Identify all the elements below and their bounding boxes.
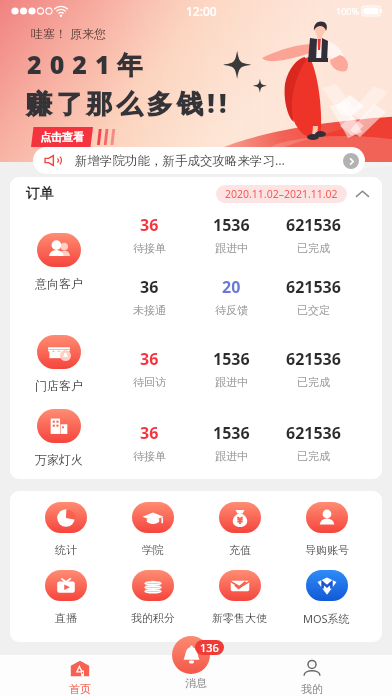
- staticText: 首页: [69, 682, 91, 696]
- staticText: 待接单: [133, 449, 166, 463]
- staticText: 直播: [55, 611, 77, 625]
- staticText: 待接单: [133, 241, 166, 255]
- button[interactable]: 首页: [22, 655, 138, 696]
- staticText: 赚了那么多钱!!: [26, 85, 231, 121]
- button[interactable]: 36: [108, 422, 190, 463]
- button[interactable]: MOS系统: [283, 570, 370, 626]
- staticText: 36: [140, 348, 159, 370]
- button[interactable]: 点击查看: [31, 127, 93, 147]
- staticText: 已完成: [297, 375, 330, 389]
- staticText: 136: [200, 640, 219, 655]
- button[interactable]: 136: [151, 634, 241, 696]
- button[interactable]: 充值: [196, 502, 283, 557]
- staticText: 新增学院功能，新手成交攻略来学习…: [75, 152, 285, 169]
- staticText: 学院: [142, 543, 164, 557]
- button[interactable]: 新零售大使: [196, 570, 283, 625]
- staticText: 统计: [55, 543, 77, 557]
- staticText: 点击查看: [40, 130, 84, 144]
- staticText: 621536: [286, 214, 341, 236]
- staticText: 新零售大使: [212, 611, 267, 625]
- staticText: 621536: [286, 422, 341, 444]
- button[interactable]: 意向客户: [10, 233, 108, 291]
- staticText: 消息: [185, 676, 207, 690]
- button[interactable]: 门店客户: [10, 335, 108, 393]
- staticText: 621536: [286, 348, 341, 370]
- button[interactable]: 2020.11.02–2021.11.02: [225, 187, 338, 201]
- staticText: 1536: [213, 348, 250, 370]
- button[interactable]: 621536: [272, 214, 354, 255]
- staticText: 待回访: [133, 375, 166, 389]
- staticText: 36: [140, 214, 159, 236]
- staticText: 2021年: [27, 47, 151, 81]
- staticText: 待反馈: [215, 303, 248, 317]
- button[interactable]: 导购账号: [283, 502, 370, 557]
- button[interactable]: 学院: [109, 502, 196, 557]
- staticText: 充值: [229, 543, 251, 557]
- staticText: 未接通: [133, 303, 166, 317]
- staticText: 621536: [286, 276, 341, 298]
- button[interactable]: 36: [108, 214, 190, 255]
- staticText: 跟进中: [215, 375, 248, 389]
- button[interactable]: 621536: [272, 276, 354, 317]
- button[interactable]: Collapse: [354, 186, 370, 202]
- button[interactable]: 新增学院功能，新手成交攻略来学习…: [33, 147, 365, 174]
- button[interactable]: 621536: [272, 422, 354, 463]
- staticText: 36: [140, 276, 159, 298]
- button[interactable]: 1536: [190, 422, 272, 463]
- button[interactable]: 20: [190, 276, 272, 317]
- staticText: 100%: [336, 5, 359, 17]
- staticText: 36: [140, 422, 159, 444]
- staticText: 1536: [213, 214, 250, 236]
- staticText: 我的积分: [131, 611, 175, 625]
- staticText: 12:00: [186, 3, 217, 19]
- button[interactable]: 1536: [190, 214, 272, 255]
- staticText: 跟进中: [215, 449, 248, 463]
- staticText: 已完成: [297, 449, 330, 463]
- staticText: 2020.11.02–2021.11.02: [225, 187, 338, 201]
- button[interactable]: 我的: [254, 655, 370, 696]
- staticText: 已完成: [297, 241, 330, 255]
- staticText: 跟进中: [215, 241, 248, 255]
- button[interactable]: 万家灯火: [10, 409, 108, 467]
- button[interactable]: 36: [108, 348, 190, 389]
- staticText: 已交定: [297, 303, 330, 317]
- staticText: 我的: [301, 682, 323, 696]
- button[interactable]: 直播: [22, 570, 109, 625]
- staticText: 哇塞！ 原来您: [31, 25, 107, 41]
- staticText: MOS系统: [303, 611, 350, 626]
- staticText: 门店客户: [35, 378, 83, 393]
- staticText: 1536: [213, 422, 250, 444]
- staticText: 订单: [26, 185, 54, 203]
- button[interactable]: 统计: [22, 502, 109, 557]
- staticText: 万家灯火: [35, 452, 83, 467]
- button[interactable]: 36: [108, 276, 190, 317]
- staticText: 20: [222, 276, 241, 298]
- button[interactable]: 1536: [190, 348, 272, 389]
- other: More: [343, 153, 359, 169]
- button[interactable]: 我的积分: [109, 570, 196, 625]
- staticText: 意向客户: [35, 276, 83, 291]
- button[interactable]: 621536: [272, 348, 354, 389]
- staticText: 导购账号: [305, 543, 349, 557]
